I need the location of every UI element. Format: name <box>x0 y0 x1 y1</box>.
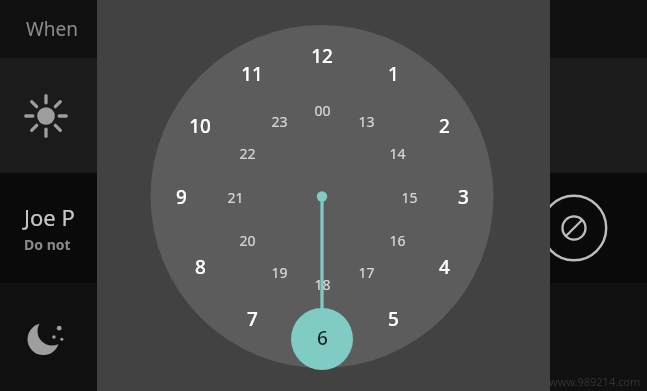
button[interactable]: 11 <box>229 51 275 97</box>
button[interactable]: 22 <box>230 136 264 170</box>
staticText: 4 <box>439 254 450 280</box>
staticText: 17 <box>358 263 375 282</box>
button[interactable]: 19 <box>262 255 296 289</box>
button[interactable]: 17 <box>349 255 383 289</box>
button[interactable]: 9 <box>158 174 204 220</box>
button[interactable]: 14 <box>380 136 414 170</box>
button[interactable]: 7 <box>229 296 275 342</box>
button[interactable]: Night mode <box>0 283 647 391</box>
staticText: 10 <box>189 113 211 139</box>
button[interactable]: 2 <box>421 103 467 149</box>
button[interactable]: 23 <box>262 104 296 138</box>
button[interactable]: 15 <box>392 180 426 214</box>
button[interactable]: 20 <box>230 223 264 257</box>
staticText: 23 <box>271 112 288 131</box>
button[interactable]: Do not disturb <box>539 193 609 263</box>
staticText: Do not <box>24 235 71 254</box>
button[interactable]: 5 <box>370 296 416 342</box>
staticText: 3 <box>458 184 469 210</box>
button[interactable]: 8 <box>177 244 223 290</box>
button[interactable]: 12 <box>299 33 345 79</box>
staticText: 5 <box>388 306 399 332</box>
button[interactable]: 10 <box>177 103 223 149</box>
staticText: 16 <box>389 231 406 250</box>
staticText: 9 <box>176 184 187 210</box>
button[interactable]: Day mode <box>0 58 647 173</box>
staticText: When <box>26 16 78 42</box>
button[interactable]: 6 <box>299 315 345 361</box>
button[interactable]: 13 <box>349 104 383 138</box>
staticText: 20 <box>239 231 256 250</box>
button[interactable]: Joe P <box>0 173 647 283</box>
staticText: 11 <box>241 61 263 87</box>
staticText: 1 <box>388 61 399 87</box>
staticText: 00 <box>314 101 331 120</box>
staticText: 19 <box>271 263 288 282</box>
button[interactable]: 00 <box>305 93 339 127</box>
button[interactable]: 4 <box>421 244 467 290</box>
staticText: 8 <box>195 254 206 280</box>
staticText: 15 <box>401 188 418 207</box>
staticText: 22 <box>239 144 256 163</box>
button[interactable]: 1 <box>370 51 416 97</box>
staticText: www.989214.com <box>549 374 641 389</box>
staticText: 6 <box>317 325 328 351</box>
button[interactable]: 21 <box>218 180 252 214</box>
staticText: 18 <box>314 275 331 294</box>
button[interactable]: 3 <box>440 174 486 220</box>
button[interactable]: Night mode <box>24 315 68 359</box>
staticText: 13 <box>358 112 375 131</box>
staticText: 14 <box>389 144 406 163</box>
staticText: 2 <box>439 113 450 139</box>
staticText: 7 <box>247 306 258 332</box>
button[interactable]: Day mode <box>24 94 68 138</box>
staticText: 12 <box>311 43 333 69</box>
button[interactable]: 16 <box>380 223 414 257</box>
staticText: Joe P <box>24 202 75 232</box>
button[interactable]: 18 <box>305 267 339 301</box>
staticText: 21 <box>227 188 244 207</box>
